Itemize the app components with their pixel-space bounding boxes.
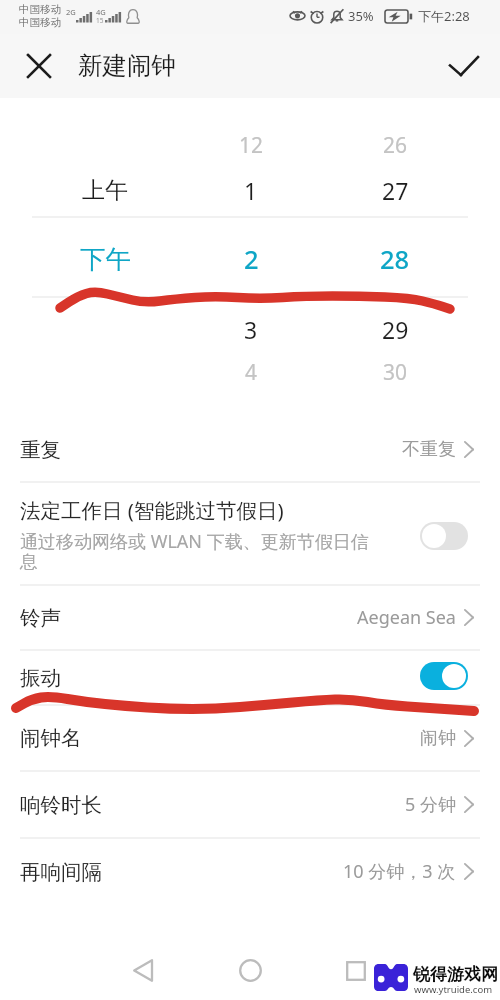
button[interactable]: 响铃时长	[0, 771, 500, 838]
staticText: 闹钟名	[20, 725, 82, 751]
staticText: 上午	[82, 176, 128, 205]
staticText: Aegean Sea	[357, 605, 456, 630]
button[interactable]: Recents	[335, 950, 376, 991]
button[interactable]: 振动	[0, 650, 500, 705]
button[interactable]: 下午	[50, 239, 160, 279]
staticText: 3	[244, 314, 258, 345]
staticText: 12	[239, 131, 264, 160]
staticText: 法定工作日 (智能跳过节假日)	[20, 496, 284, 524]
staticText: 10 分钟，3 次	[343, 859, 456, 884]
staticText: 4G	[96, 7, 106, 17]
button[interactable]: 4	[196, 352, 306, 392]
button[interactable]: 再响间隔	[0, 838, 500, 905]
button[interactable]: 30	[340, 352, 450, 392]
staticText: 1	[244, 175, 258, 206]
staticText: 29	[382, 314, 409, 345]
button[interactable]: 2	[196, 239, 306, 279]
button[interactable]: 27	[340, 170, 450, 210]
staticText: 铃声	[20, 605, 61, 631]
button[interactable]: 3	[196, 309, 306, 349]
staticText: 35%	[348, 7, 374, 25]
staticText: 锐得游戏网	[413, 964, 498, 985]
staticText: 不重复	[402, 438, 456, 461]
button[interactable]: 28	[340, 239, 450, 279]
staticText: 通过移动网络或 WLAN 下载、更新节假日信息	[20, 529, 382, 573]
staticText: 响铃时长	[20, 792, 102, 818]
staticText: 重复	[20, 437, 61, 463]
button[interactable]: 闹钟名	[0, 705, 500, 771]
button[interactable]: Switch on	[420, 662, 468, 690]
button[interactable]: 法定工作日 (智能跳过节假日)	[0, 482, 500, 585]
staticText: 26	[383, 131, 408, 160]
button[interactable]: 上午	[50, 170, 160, 210]
staticText: 中国移动	[19, 3, 61, 16]
button[interactable]: 铃声	[0, 585, 500, 650]
button[interactable]: 1	[196, 170, 306, 210]
button[interactable]: Home	[230, 950, 271, 991]
button[interactable]: Back	[122, 950, 163, 991]
staticText: 5 分钟	[405, 792, 456, 817]
staticText: 4	[245, 358, 258, 387]
button[interactable]: 29	[340, 309, 450, 349]
staticText: 2G	[66, 7, 76, 17]
staticText: 中国移动	[19, 16, 61, 29]
staticText: 新建闹钟	[78, 50, 176, 81]
staticText: 30	[383, 358, 408, 387]
staticText: 2	[244, 242, 259, 277]
button[interactable]: Switch off	[420, 522, 468, 550]
staticText: 27	[382, 175, 409, 206]
staticText: 闹钟	[420, 727, 456, 750]
button[interactable]: Close	[19, 46, 59, 86]
button[interactable]: Confirm	[442, 44, 486, 88]
staticText: 28	[380, 242, 410, 277]
staticText: 再响间隔	[20, 859, 102, 885]
button[interactable]: 26	[340, 125, 450, 165]
staticText: 下午2:28	[418, 7, 470, 25]
staticText: 振动	[20, 665, 61, 691]
button[interactable]: 12	[196, 125, 306, 165]
staticText: www.ytruide.com	[414, 983, 493, 996]
button[interactable]: 重复	[0, 417, 500, 482]
staticText: 15	[96, 16, 104, 25]
staticText: 下午	[80, 243, 131, 275]
